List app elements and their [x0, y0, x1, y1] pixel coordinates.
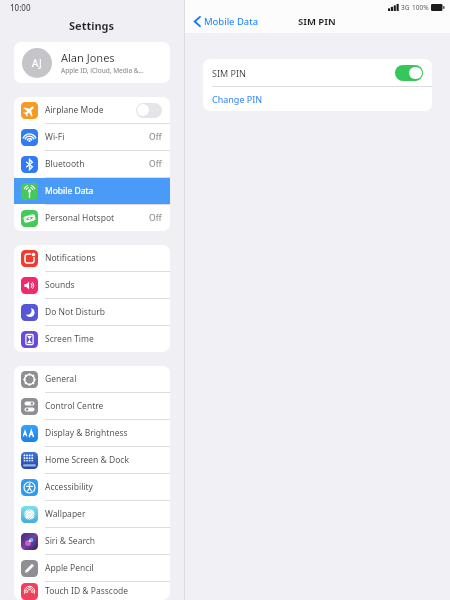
- button[interactable]: Accessibility: [14, 474, 170, 500]
- staticText: Settings: [69, 18, 115, 33]
- button[interactable]: Sounds: [14, 272, 170, 298]
- staticText: Bluetooth: [45, 158, 149, 170]
- staticText: Apple ID, iCloud, Media &…: [61, 66, 144, 75]
- staticText: Personal Hotspot: [45, 212, 149, 224]
- staticText: Alan Jones: [61, 50, 115, 65]
- button[interactable]: Display & Brightness: [14, 420, 170, 446]
- staticText: Display & Brightness: [45, 427, 162, 439]
- staticText: 10:00: [10, 2, 31, 13]
- button[interactable]: Mobile Data: [14, 178, 170, 204]
- staticText: Home Screen & Dock: [45, 454, 162, 466]
- staticText: General: [45, 373, 162, 385]
- button[interactable]: Home Screen & Dock: [14, 447, 170, 473]
- button[interactable]: Change PIN: [203, 87, 432, 111]
- button[interactable]: Control Centre: [14, 393, 170, 419]
- button[interactable]: SIM PIN: [203, 59, 432, 86]
- button[interactable]: Wi-Fi: [14, 124, 170, 150]
- button[interactable]: Do Not Disturb: [14, 299, 170, 325]
- button[interactable]: Screen Time: [14, 326, 170, 352]
- staticText: 3G: [401, 3, 410, 12]
- button[interactable]: SIM PIN toggle, on: [395, 65, 423, 81]
- staticText: Do Not Disturb: [45, 306, 162, 318]
- staticText: Wi-Fi: [45, 131, 149, 143]
- staticText: Airplane Mode: [45, 104, 136, 116]
- staticText: Off: [149, 158, 162, 170]
- staticText: Off: [149, 131, 162, 143]
- staticText: Mobile Data: [45, 185, 162, 197]
- staticText: Screen Time: [45, 333, 162, 345]
- staticText: Mobile Data: [204, 15, 258, 28]
- staticText: SIM PIN: [212, 67, 395, 79]
- staticText: AJ: [32, 56, 42, 70]
- staticText: 100%: [412, 3, 429, 12]
- button[interactable]: Siri & Search: [14, 528, 170, 554]
- button[interactable]: Bluetooth: [14, 151, 170, 177]
- button[interactable]: General: [14, 366, 170, 392]
- button[interactable]: Apple Pencil: [14, 555, 170, 581]
- button[interactable]: Airplane Mode: [14, 97, 170, 123]
- button[interactable]: AJ: [14, 42, 170, 83]
- staticText: Accessibility: [45, 481, 162, 493]
- button[interactable]: Touch ID & Passcode: [14, 582, 170, 600]
- staticText: Change PIN: [212, 93, 263, 105]
- staticText: Control Centre: [45, 400, 162, 412]
- staticText: Touch ID & Passcode: [45, 585, 162, 597]
- staticText: Wallpaper: [45, 508, 162, 520]
- staticText: Sounds: [45, 279, 162, 291]
- button[interactable]: Personal Hotspot: [14, 205, 170, 231]
- button[interactable]: Mobile Data: [194, 15, 258, 28]
- staticText: Off: [149, 212, 162, 224]
- button[interactable]: Notifications: [14, 245, 170, 271]
- staticText: Apple Pencil: [45, 562, 162, 574]
- staticText: SIM PIN: [298, 15, 336, 28]
- button[interactable]: Airplane Mode toggle: [136, 103, 162, 118]
- staticText: Siri & Search: [45, 535, 162, 547]
- staticText: Notifications: [45, 252, 162, 264]
- button[interactable]: Wallpaper: [14, 501, 170, 527]
